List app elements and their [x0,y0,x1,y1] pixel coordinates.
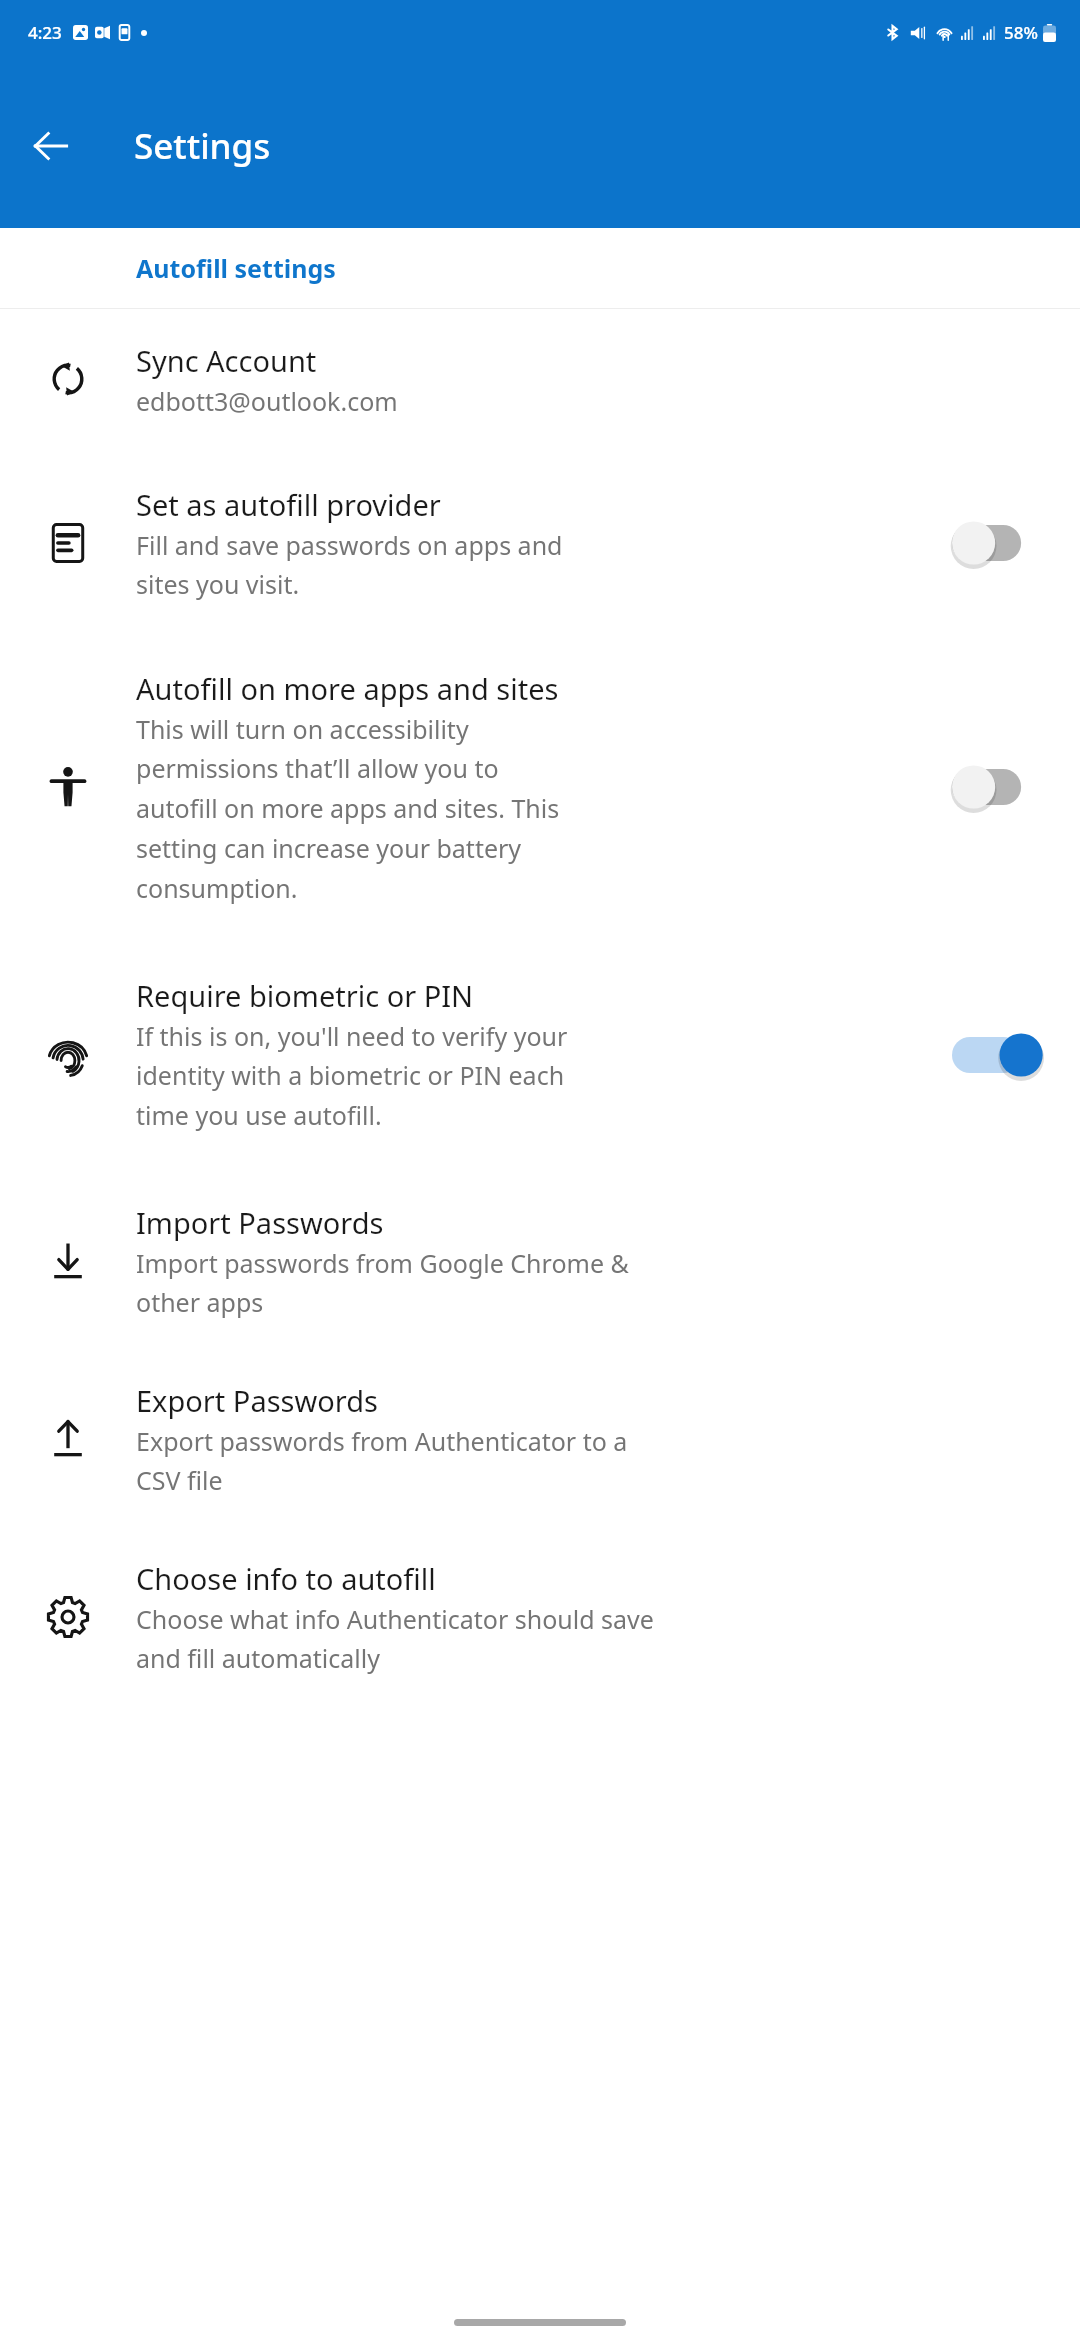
staticText: Export Passwords [136,1381,378,1420]
staticText: Autofill settings [136,251,336,285]
button[interactable]: Require biometric or PIN [0,937,1080,1172]
staticText: Fill and save passwords on apps and site… [136,528,563,602]
staticText: This will turn on accessibility permissi… [136,712,560,906]
button[interactable]: Export Passwords [0,1350,1080,1528]
staticText: 4:23 [28,21,62,44]
staticText: Import Passwords [136,1203,384,1242]
staticText: Choose what info Authenticator should sa… [136,1602,654,1676]
button[interactable]: Import Passwords [0,1172,1080,1350]
button[interactable]: Toggle off [952,757,1048,817]
button[interactable]: Back [14,109,88,183]
staticText: Settings [134,122,271,170]
staticText: Sync Account [136,341,317,380]
staticText: Require biometric or PIN [136,976,474,1015]
button[interactable]: Choose info to autofill [0,1528,1080,1706]
button[interactable]: Toggle off [952,513,1048,573]
staticText: If this is on, you'll need to verify you… [136,1019,568,1133]
button[interactable]: Set as autofill provider [0,449,1080,637]
button[interactable]: Toggle on [952,1025,1048,1085]
staticText: Export passwords from Authenticator to a… [136,1424,628,1498]
button[interactable]: Sync Account [0,309,1080,449]
staticText: Set as autofill provider [136,485,441,524]
staticText: Import passwords from Google Chrome & ot… [136,1246,629,1320]
staticText: Choose info to autofill [136,1559,436,1598]
staticText: edbott3@outlook.com [136,384,398,418]
staticText: 58% [1004,21,1038,44]
button[interactable]: Autofill on more apps and sites [0,637,1080,937]
staticText: Autofill on more apps and sites [136,669,559,708]
